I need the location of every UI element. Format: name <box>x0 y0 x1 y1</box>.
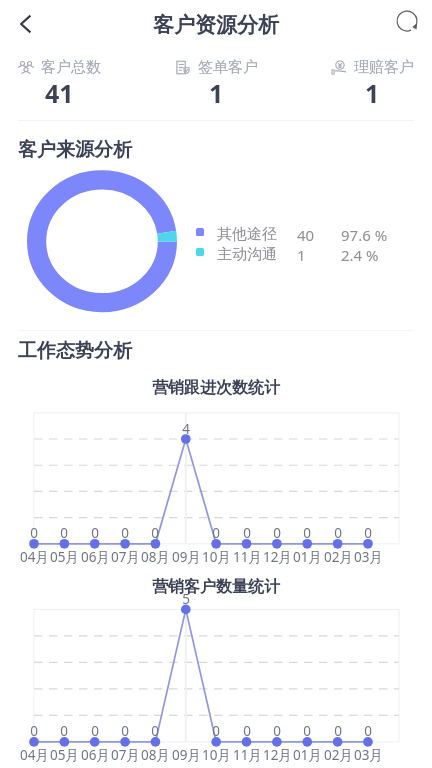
staticText: 02月 <box>324 746 353 764</box>
button[interactable]: 主动沟通 <box>0 244 432 262</box>
staticText: 客户来源分析 <box>18 138 132 162</box>
staticText: 0 <box>60 524 68 542</box>
staticText: 0 <box>151 524 159 542</box>
staticText: 05月 <box>50 548 79 566</box>
staticText: 客户总数 <box>41 58 101 77</box>
staticText: 12月 <box>263 746 292 764</box>
staticText: 0 <box>303 722 311 740</box>
staticText: 0 <box>30 722 38 740</box>
staticText: 签单客户 <box>198 58 258 77</box>
staticText: 40 <box>297 225 315 243</box>
staticText: 工作态势分析 <box>18 339 132 363</box>
staticText: 0 <box>243 524 251 542</box>
staticText: 营销客户数量统计 <box>152 577 280 597</box>
staticText: 1 <box>365 76 380 110</box>
button[interactable]: 其他途径 <box>0 224 432 242</box>
button[interactable]: 理赔客户 <box>331 58 414 111</box>
staticText: 04月 <box>20 548 49 566</box>
staticText: 5 <box>182 590 190 608</box>
staticText: 0 <box>334 722 342 740</box>
staticText: 0 <box>212 524 220 542</box>
staticText: 理赔客户 <box>354 58 414 77</box>
staticText: 0 <box>212 722 220 740</box>
button[interactable]: 签单客户 <box>175 58 258 111</box>
button[interactable]: Refresh <box>387 1 427 41</box>
staticText: 1 <box>297 245 306 263</box>
staticText: 01月 <box>293 548 322 566</box>
staticText: 0 <box>273 524 281 542</box>
staticText: 01月 <box>293 746 322 764</box>
staticText: 0 <box>121 722 129 740</box>
staticText: 07月 <box>111 548 140 566</box>
staticText: 其他途径 <box>217 225 277 243</box>
staticText: 0 <box>243 722 251 740</box>
button[interactable]: 客户总数 <box>18 58 101 111</box>
staticText: 08月 <box>141 746 170 764</box>
staticText: 0 <box>364 524 372 542</box>
staticText: 0 <box>30 524 38 542</box>
staticText: 05月 <box>50 746 79 764</box>
staticText: 0 <box>364 722 372 740</box>
staticText: 0 <box>91 722 99 740</box>
button[interactable]: Back <box>6 4 46 44</box>
staticText: 0 <box>334 524 342 542</box>
staticText: 0 <box>60 722 68 740</box>
staticText: 0 <box>273 722 281 740</box>
staticText: 08月 <box>141 548 170 566</box>
staticText: 02月 <box>324 548 353 566</box>
staticText: 09月 <box>172 548 201 566</box>
staticText: 客户资源分析 <box>153 12 279 38</box>
staticText: 10月 <box>202 548 231 566</box>
staticText: 2.4 % <box>341 245 379 263</box>
staticText: 09月 <box>172 746 201 764</box>
staticText: 0 <box>151 722 159 740</box>
staticText: 4 <box>182 420 190 438</box>
staticText: 营销跟进次数统计 <box>152 378 280 398</box>
staticText: 97.6 % <box>341 225 388 243</box>
staticText: 12月 <box>263 548 292 566</box>
staticText: 41 <box>45 76 74 110</box>
staticText: 04月 <box>20 746 49 764</box>
staticText: 11月 <box>233 746 262 764</box>
staticText: 07月 <box>111 746 140 764</box>
staticText: 03月 <box>354 746 383 764</box>
staticText: 03月 <box>354 548 383 566</box>
staticText: 0 <box>121 524 129 542</box>
staticText: 0 <box>303 524 311 542</box>
staticText: 11月 <box>233 548 262 566</box>
staticText: 10月 <box>202 746 231 764</box>
staticText: 1 <box>209 76 224 110</box>
staticText: 主动沟通 <box>217 245 277 263</box>
staticText: 06月 <box>81 746 110 764</box>
staticText: 06月 <box>81 548 110 566</box>
staticText: 0 <box>91 524 99 542</box>
